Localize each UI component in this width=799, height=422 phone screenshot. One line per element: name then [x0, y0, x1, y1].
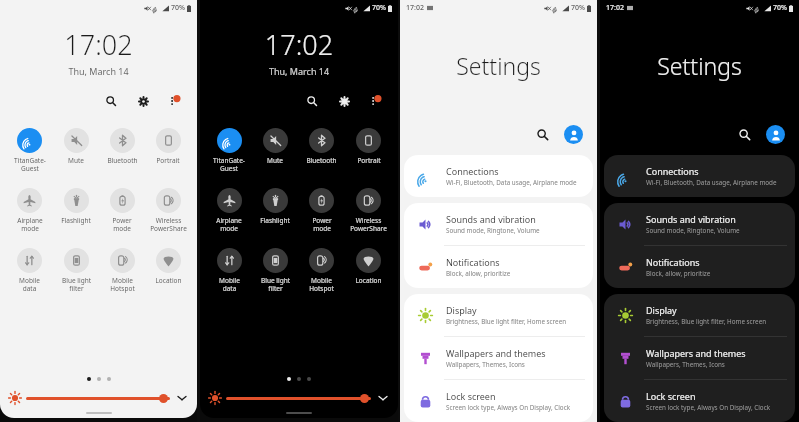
- button[interactable]: Expand: [175, 391, 189, 405]
- button[interactable]: Mobile Hotspot: [298, 245, 345, 305]
- staticText: Wi-Fi, Bluetooth, Data usage, Airplane m…: [446, 178, 577, 187]
- staticText: TitanGate- Guest: [213, 156, 245, 173]
- staticText: Settings: [400, 50, 597, 81]
- staticText: Sounds and vibration: [446, 213, 536, 225]
- button[interactable]: Mobile data: [6, 245, 53, 305]
- button[interactable]: Connections: [404, 155, 593, 197]
- staticText: Connections: [446, 165, 499, 177]
- staticText: 17:02: [606, 3, 624, 13]
- staticText: Sound mode, Ringtone, Volume: [446, 226, 540, 235]
- button[interactable]: Notifications: [404, 246, 593, 288]
- staticText: Brightness, Blue light filter, Home scre…: [646, 317, 767, 326]
- staticText: Screen lock type, Always On Display, Clo…: [446, 403, 571, 412]
- staticText: Screen lock type, Always On Display, Clo…: [646, 403, 771, 412]
- staticText: 17:02: [200, 26, 398, 63]
- button[interactable]: Flashlight: [252, 185, 298, 245]
- staticText: Display: [646, 304, 677, 316]
- staticText: Sounds and vibration: [646, 213, 736, 225]
- button[interactable]: Mute: [53, 125, 99, 185]
- button[interactable]: Account: [564, 125, 583, 144]
- staticText: Mute: [267, 156, 283, 165]
- button[interactable]: Power mode: [99, 185, 145, 245]
- button[interactable]: Airplane mode: [206, 185, 252, 245]
- staticText: Block, allow, prioritize: [446, 269, 511, 278]
- button[interactable]: Mobile data: [206, 245, 252, 305]
- button[interactable]: Blue light filter: [252, 245, 298, 305]
- button[interactable]: Settings: [334, 91, 354, 111]
- button[interactable]: Sounds and vibration: [604, 203, 795, 245]
- button[interactable]: Location: [345, 245, 392, 305]
- button[interactable]: Flashlight: [53, 185, 99, 245]
- staticText: TitanGate- Guest: [14, 156, 46, 173]
- button[interactable]: Search settings: [531, 123, 553, 145]
- staticText: Bluetooth: [107, 156, 138, 165]
- button[interactable]: Bluetooth: [99, 125, 145, 185]
- staticText: Wallpapers and themes: [446, 347, 546, 359]
- staticText: Wireless PowerShare: [350, 216, 387, 233]
- staticText: 70%: [773, 3, 787, 13]
- button[interactable]: Mobile Hotspot: [99, 245, 145, 305]
- staticText: Sound mode, Ringtone, Volume: [646, 226, 740, 235]
- staticText: 70%: [171, 3, 185, 13]
- button[interactable]: More options: [165, 91, 185, 111]
- staticText: Location: [155, 276, 182, 285]
- button[interactable]: Account: [766, 125, 785, 144]
- staticText: Connections: [646, 165, 699, 177]
- staticText: Notifications: [646, 256, 700, 268]
- staticText: Brightness, Blue light filter, Home scre…: [446, 317, 567, 326]
- button[interactable]: Settings: [133, 91, 153, 111]
- staticText: Blue light filter: [261, 276, 290, 293]
- button[interactable]: Display: [404, 294, 593, 336]
- staticText: Airplane mode: [216, 216, 242, 233]
- staticText: Mobile data: [19, 276, 40, 293]
- staticText: Lock screen: [446, 390, 496, 402]
- staticText: 70%: [372, 3, 386, 13]
- button[interactable]: Wallpapers and themes: [404, 337, 593, 379]
- button[interactable]: Lock screen: [604, 380, 795, 422]
- staticText: Power mode: [312, 216, 332, 233]
- button[interactable]: Search settings: [733, 123, 755, 145]
- button[interactable]: More options: [366, 91, 386, 111]
- button[interactable]: Wireless PowerShare: [145, 185, 191, 245]
- staticText: Notifications: [446, 256, 500, 268]
- staticText: Wallpapers and themes: [646, 347, 746, 359]
- button[interactable]: Bluetooth: [298, 125, 345, 185]
- staticText: 70%: [571, 3, 585, 13]
- staticText: Mobile Hotspot: [110, 276, 135, 293]
- staticText: Mobile Hotspot: [309, 276, 334, 293]
- button[interactable]: Mute: [252, 125, 298, 185]
- button[interactable]: Notifications: [604, 246, 795, 288]
- staticText: Portrait: [156, 156, 180, 165]
- button[interactable]: Power mode: [298, 185, 345, 245]
- button[interactable]: Expand: [376, 391, 390, 405]
- staticText: Wireless PowerShare: [150, 216, 187, 233]
- staticText: Settings: [600, 50, 799, 81]
- button[interactable]: TitanGate- Guest: [206, 125, 252, 185]
- button[interactable]: TitanGate- Guest: [6, 125, 53, 185]
- button[interactable]: Search: [302, 91, 322, 111]
- staticText: Portrait: [357, 156, 381, 165]
- button[interactable]: Sounds and vibration: [404, 203, 593, 245]
- staticText: Wallpapers, Themes, Icons: [446, 360, 525, 369]
- staticText: Location: [355, 276, 382, 285]
- button[interactable]: Blue light filter: [53, 245, 99, 305]
- staticText: Block, allow, prioritize: [646, 269, 711, 278]
- staticText: Thu, March 14: [0, 65, 197, 77]
- button[interactable]: Portrait: [145, 125, 191, 185]
- staticText: Display: [446, 304, 477, 316]
- button[interactable]: Portrait: [345, 125, 392, 185]
- staticText: Flashlight: [61, 216, 91, 225]
- staticText: Mute: [68, 156, 84, 165]
- button[interactable]: Wallpapers and themes: [604, 337, 795, 379]
- button[interactable]: Wireless PowerShare: [345, 185, 392, 245]
- staticText: Thu, March 14: [200, 65, 398, 77]
- button[interactable]: Airplane mode: [6, 185, 53, 245]
- staticText: Airplane mode: [17, 216, 43, 233]
- button[interactable]: Location: [145, 245, 191, 305]
- button[interactable]: Connections: [604, 155, 795, 197]
- staticText: Lock screen: [646, 390, 696, 402]
- staticText: Bluetooth: [306, 156, 337, 165]
- button[interactable]: Lock screen: [404, 380, 593, 422]
- button[interactable]: Search: [101, 91, 121, 111]
- button[interactable]: Display: [604, 294, 795, 336]
